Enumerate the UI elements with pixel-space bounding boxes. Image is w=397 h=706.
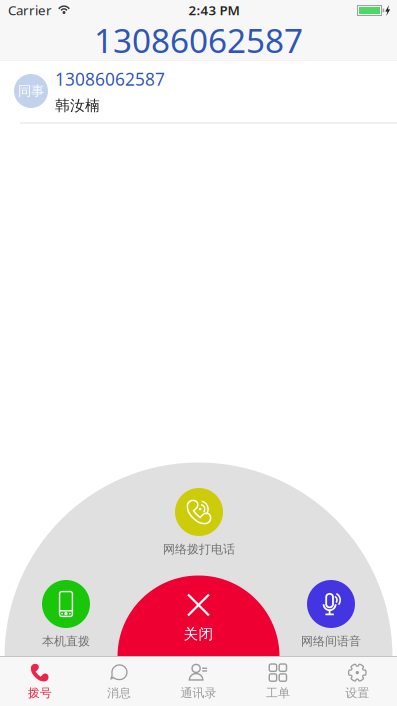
button[interactable]: 拨号 xyxy=(0,657,79,705)
staticText: 网络间语音 xyxy=(301,634,361,649)
button[interactable]: 同事 xyxy=(0,60,397,123)
staticText: 通讯录 xyxy=(180,686,216,700)
staticText: 13086062587 xyxy=(94,18,303,62)
button[interactable]: 消息 xyxy=(79,657,159,705)
button[interactable]: 通讯录 xyxy=(159,657,238,705)
staticText: 拨号 xyxy=(28,686,52,700)
button[interactable]: 关闭 xyxy=(138,593,258,651)
button[interactable]: 本机直拨 xyxy=(11,580,121,656)
staticText: 2:43 PM xyxy=(188,1,239,19)
staticText: 设置 xyxy=(345,686,369,700)
staticText: 韩汝楠 xyxy=(55,96,100,114)
staticText: 消息 xyxy=(107,686,131,700)
staticText: 同事 xyxy=(18,83,44,99)
button[interactable]: 网络间语音 xyxy=(276,580,386,656)
staticText: 13086062587 xyxy=(55,67,165,90)
staticText: 工单 xyxy=(266,686,290,700)
button[interactable]: 工单 xyxy=(238,657,318,705)
button[interactable]: 网络拨打电话 xyxy=(144,488,254,564)
staticText: 关闭 xyxy=(183,625,213,643)
staticText: Carrier xyxy=(8,1,52,19)
staticText: 网络拨打电话 xyxy=(163,542,235,557)
staticText: 本机直拨 xyxy=(42,634,90,649)
button[interactable]: 设置 xyxy=(318,657,397,705)
